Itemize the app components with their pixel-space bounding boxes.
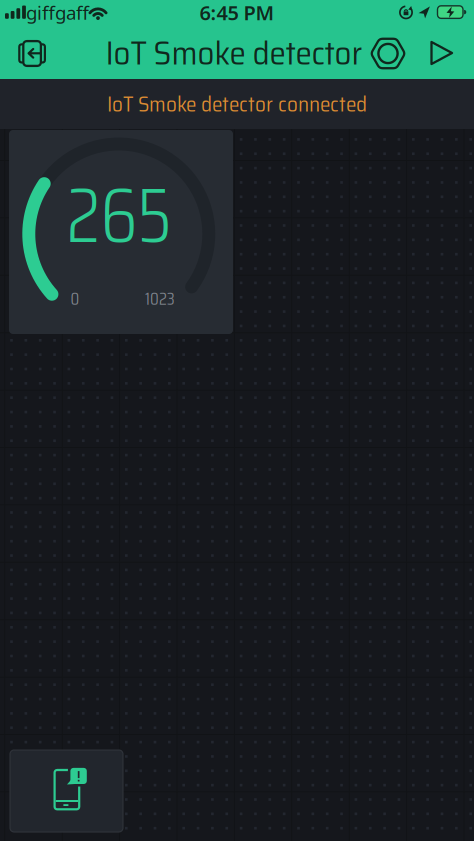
- button[interactable]: Project Settings: [368, 33, 408, 73]
- staticText: 0: [70, 284, 79, 313]
- button[interactable]: My Apps: [9, 31, 55, 75]
- staticText: 1023: [145, 284, 175, 313]
- staticText: 265: [66, 154, 171, 276]
- button[interactable]: Push Notifications: [10, 750, 123, 832]
- button[interactable]: Gauge 265: [9, 130, 233, 334]
- staticText: 6:45 PM: [199, 0, 274, 26]
- button[interactable]: Run: [425, 36, 459, 70]
- staticText: IoT Smoke detector: [105, 27, 362, 79]
- staticText: IoT Smoke detector connected: [107, 87, 367, 121]
- staticText: giffgaff: [26, 0, 89, 25]
